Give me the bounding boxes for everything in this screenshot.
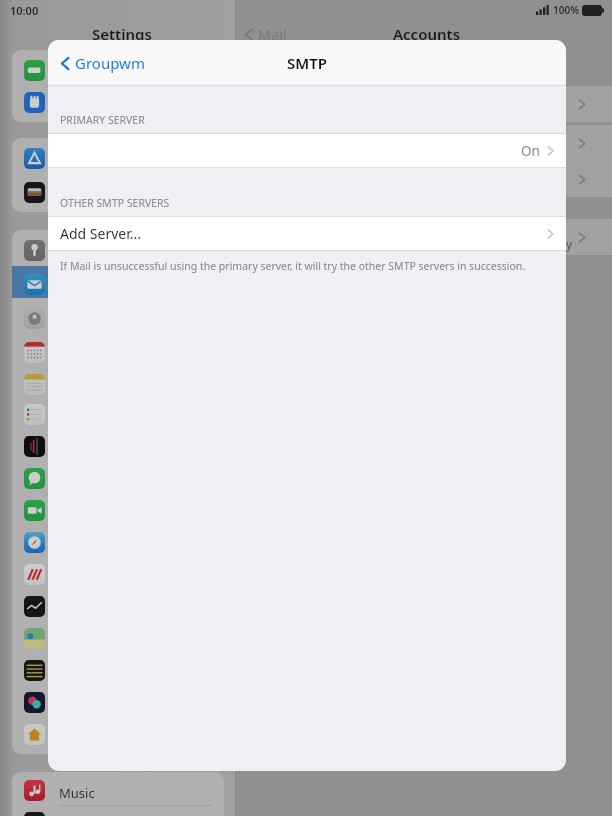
staticText: PRIMARY SERVER — [60, 113, 145, 127]
button[interactable]: Add Server... — [48, 217, 566, 250]
staticText: OTHER SMTP SERVERS — [60, 196, 170, 210]
staticText: Accounts — [393, 24, 461, 44]
staticText: Add Server... — [60, 224, 141, 243]
staticText: Music — [59, 784, 95, 802]
button[interactable]: On — [48, 134, 566, 167]
staticText: On — [521, 142, 540, 160]
staticText: SMTP — [287, 53, 327, 73]
staticText: Mail — [258, 24, 287, 44]
staticText: Settings — [92, 24, 152, 44]
staticText: Groupwm — [75, 53, 145, 73]
staticText: 100% — [553, 3, 579, 17]
staticText: y — [566, 236, 573, 252]
button[interactable]: Groupwm — [56, 49, 149, 77]
staticText: If Mail is unsuccessful using the primar… — [60, 259, 526, 273]
staticText: 10:00 — [10, 3, 39, 18]
